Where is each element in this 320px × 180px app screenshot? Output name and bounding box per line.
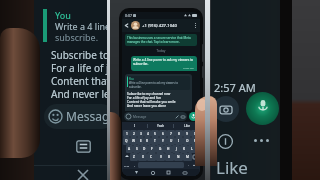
staticText: Write a 4 line poem to ask my viewers to bbox=[129, 81, 179, 85]
staticText: subscribe. bbox=[129, 85, 142, 89]
staticText: Message bbox=[66, 108, 117, 124]
staticText: K bbox=[183, 147, 186, 151]
staticText: manages the chat. Tap to learn more. bbox=[127, 40, 180, 44]
staticText: , bbox=[134, 163, 135, 167]
staticText: N bbox=[177, 155, 180, 159]
button[interactable]: P bbox=[191, 137, 199, 145]
button[interactable]: 9 bbox=[183, 130, 191, 137]
staticText: P bbox=[194, 139, 196, 143]
button[interactable]: 7 bbox=[167, 130, 175, 137]
staticText: X bbox=[142, 155, 144, 159]
button[interactable]: Enter bbox=[191, 161, 199, 169]
other: Back bbox=[135, 171, 138, 174]
other: Home bbox=[151, 171, 155, 175]
staticText: And never lea bbox=[51, 87, 116, 101]
staticText: 8 bbox=[178, 132, 180, 136]
button[interactable]: Back bbox=[124, 19, 198, 32]
button[interactable]: 1 bbox=[123, 130, 130, 137]
button[interactable]: A bbox=[126, 145, 133, 153]
button[interactable]: R bbox=[144, 137, 151, 145]
button[interactable]: 6 bbox=[159, 130, 167, 137]
button[interactable]: ?123 bbox=[123, 161, 131, 169]
button[interactable]: K bbox=[180, 145, 188, 153]
staticText: 4 bbox=[147, 132, 149, 136]
button[interactable]: B bbox=[165, 153, 174, 161]
button[interactable]: E bbox=[137, 137, 144, 145]
button[interactable]: J bbox=[172, 145, 180, 153]
staticText: C bbox=[150, 155, 153, 159]
button[interactable]: W bbox=[130, 137, 137, 145]
staticText: ?123 bbox=[124, 164, 130, 167]
button[interactable]: , bbox=[131, 161, 137, 169]
staticText: You bbox=[55, 9, 71, 21]
staticText: 12:57 AM bbox=[183, 66, 194, 69]
staticText: 9 bbox=[186, 132, 188, 136]
button[interactable]: Backspace bbox=[192, 153, 199, 161]
staticText: 0 bbox=[194, 132, 196, 136]
button[interactable]: T bbox=[151, 137, 159, 145]
other: Recents bbox=[167, 171, 170, 174]
staticText: L bbox=[191, 147, 193, 151]
staticText: Y bbox=[162, 139, 164, 143]
button[interactable]: Z bbox=[130, 153, 138, 161]
button[interactable]: V bbox=[156, 153, 165, 161]
button[interactable]: H bbox=[164, 145, 172, 153]
button[interactable]: 5 bbox=[151, 130, 159, 137]
staticText: U bbox=[170, 139, 173, 143]
button[interactable]: I bbox=[175, 137, 183, 145]
staticText: 5 bbox=[154, 132, 156, 136]
staticText: +1 (916) 427-1040 bbox=[142, 23, 177, 29]
button[interactable]: Send bbox=[189, 112, 198, 121]
button[interactable]: 0 bbox=[191, 130, 199, 137]
staticText: I bbox=[134, 124, 136, 128]
staticText: Subscribe to n bbox=[51, 48, 118, 62]
staticText: E bbox=[140, 139, 142, 143]
staticText: A bbox=[128, 147, 131, 151]
other: Attach bbox=[175, 115, 179, 119]
button[interactable]: L bbox=[188, 145, 196, 153]
button[interactable]: F bbox=[148, 145, 156, 153]
staticText: 1 bbox=[126, 132, 128, 136]
staticText: 2 bbox=[133, 132, 135, 136]
staticText: Subscribe to my channel now bbox=[127, 92, 171, 96]
staticText: Like bbox=[184, 124, 190, 128]
other: Camera bbox=[181, 115, 185, 119]
button[interactable]: O bbox=[183, 137, 191, 145]
staticText: This business uses a secure service that… bbox=[127, 36, 191, 40]
button[interactable]: D bbox=[140, 145, 148, 153]
button[interactable]: . bbox=[185, 161, 191, 169]
button[interactable]: Shift bbox=[123, 153, 130, 161]
button[interactable]: 8 bbox=[175, 130, 183, 137]
button[interactable]: 3 bbox=[137, 130, 144, 137]
staticText: . bbox=[188, 163, 189, 167]
staticText: F bbox=[151, 147, 153, 151]
other: More options bbox=[192, 23, 198, 29]
staticText: Like bbox=[216, 156, 248, 179]
button[interactable]: M bbox=[183, 153, 192, 161]
staticText: M bbox=[186, 155, 189, 159]
button[interactable]: S bbox=[133, 145, 140, 153]
staticText: V bbox=[160, 155, 162, 159]
button[interactable]: U bbox=[167, 137, 175, 145]
staticText: D bbox=[143, 147, 146, 151]
staticText: subscribe. bbox=[133, 62, 149, 66]
staticText: W bbox=[132, 139, 135, 143]
button[interactable]: X bbox=[138, 153, 147, 161]
staticText: Z bbox=[133, 155, 135, 159]
staticText: And never leave you alone bbox=[127, 104, 166, 108]
staticText: 6 bbox=[162, 132, 164, 136]
button[interactable]: G bbox=[156, 145, 164, 153]
button[interactable]: C bbox=[147, 153, 156, 161]
staticText: T bbox=[154, 139, 156, 143]
button[interactable]: Y bbox=[159, 137, 167, 145]
button[interactable]: Q bbox=[123, 137, 130, 145]
staticText: Write a 4 line poem to ask my viewers to bbox=[133, 58, 194, 62]
button[interactable]: 2 bbox=[130, 130, 137, 137]
button[interactable]: N bbox=[174, 153, 183, 161]
staticText: Content that v bbox=[51, 74, 118, 88]
button[interactable]: 4 bbox=[144, 130, 151, 137]
button[interactable]: Message bbox=[126, 112, 185, 121]
staticText: 3 bbox=[140, 132, 142, 136]
